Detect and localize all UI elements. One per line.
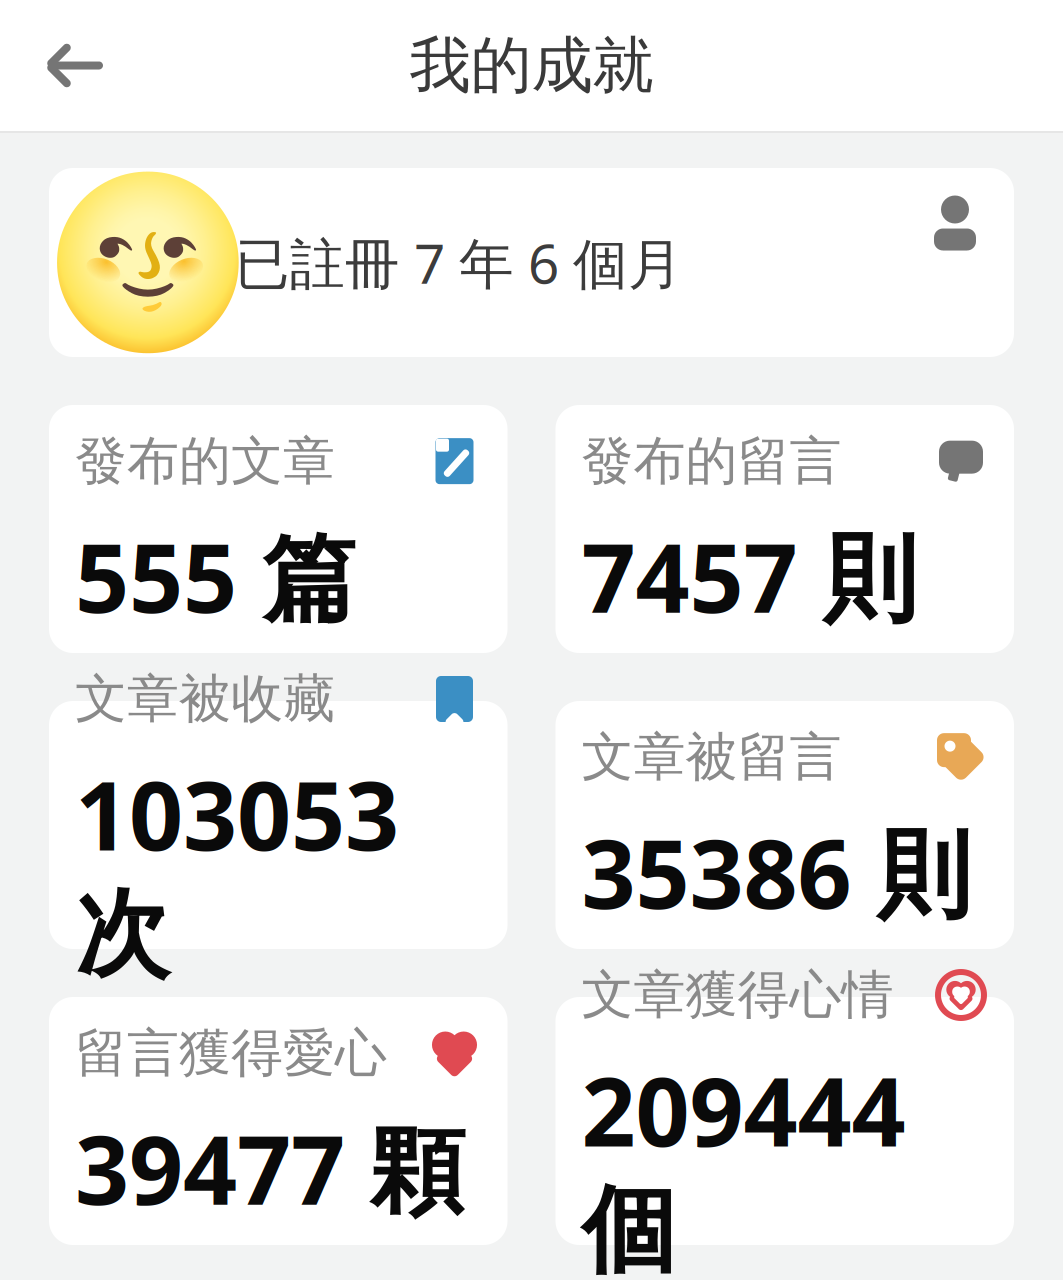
staticText: 文章被留言: [581, 725, 841, 789]
staticText: 39477 顆: [75, 1105, 465, 1231]
staticText: 發布的留言: [581, 429, 841, 493]
staticText: 留言獲得愛心: [75, 1021, 387, 1085]
staticText: 我的成就: [409, 28, 653, 103]
staticText: 已註冊 7 年 6 個月: [235, 226, 683, 299]
staticText: 發布的文章: [75, 429, 335, 493]
button[interactable]: Back: [24, 17, 120, 113]
staticText: 7457 則: [581, 513, 917, 639]
staticText: 555 篇: [75, 513, 357, 639]
button[interactable]: 文章被留言: [555, 701, 1014, 949]
staticText: 209444 個: [581, 1047, 905, 1280]
staticText: 103053 次: [75, 751, 399, 993]
button[interactable]: 發布的留言: [555, 405, 1014, 653]
staticText: 🌝: [45, 168, 251, 357]
button[interactable]: 文章獲得心情: [555, 997, 1014, 1245]
button[interactable]: 留言獲得愛心: [49, 997, 507, 1245]
button[interactable]: 發布的文章: [49, 405, 507, 653]
staticText: 文章獲得心情: [581, 963, 893, 1027]
button[interactable]: 文章被收藏: [49, 701, 507, 949]
staticText: 35386 則: [581, 809, 971, 935]
staticText: 文章被收藏: [75, 667, 335, 731]
button[interactable]: Profile: [920, 188, 990, 258]
